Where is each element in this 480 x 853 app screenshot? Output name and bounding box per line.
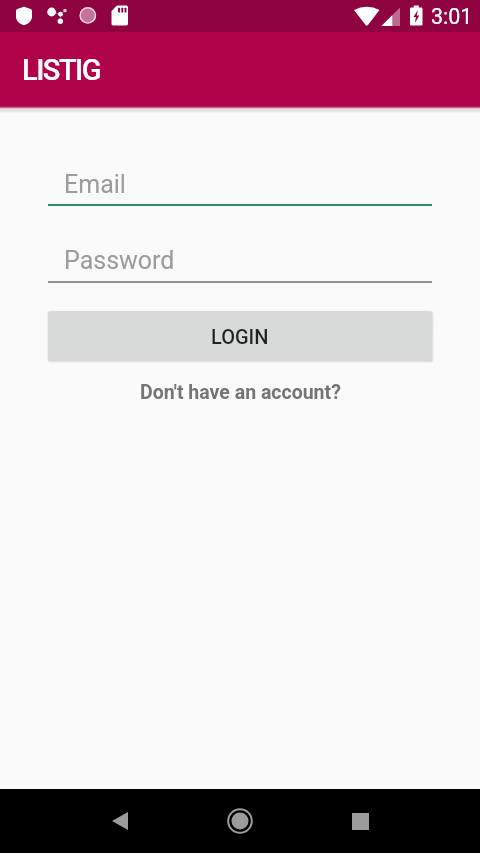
- button[interactable]: Password: [48, 243, 432, 283]
- button[interactable]: LOGIN: [48, 311, 432, 361]
- button[interactable]: Recent apps: [332, 793, 388, 849]
- staticText: 3:01: [431, 4, 473, 29]
- button[interactable]: Don't have an account?: [0, 378, 480, 406]
- staticText: LISTIG: [22, 53, 101, 87]
- staticText: LOGIN: [211, 325, 269, 348]
- button[interactable]: Home: [212, 793, 268, 849]
- staticText: Password: [64, 246, 175, 275]
- staticText: Email: [64, 170, 126, 199]
- button[interactable]: Email: [48, 167, 432, 206]
- button[interactable]: Back: [92, 793, 148, 849]
- staticText: Don't have an account?: [140, 381, 341, 404]
